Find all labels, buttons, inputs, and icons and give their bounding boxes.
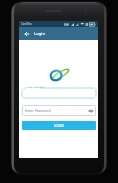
button[interactable]: Enter Password: [22, 105, 96, 116]
button[interactable]: Toggle password visibility: [86, 106, 96, 116]
button[interactable]: Back: [19, 27, 34, 40]
button[interactable]: Enter Username: [22, 88, 96, 98]
staticText: Enter Password: [25, 108, 51, 113]
staticText: Enter Username: [27, 86, 44, 89]
button[interactable]: LOGIN: [22, 121, 96, 130]
staticText: Login: [34, 31, 45, 37]
staticText: LOGIN: [54, 124, 64, 128]
staticText: Card Rec: [21, 22, 32, 26]
